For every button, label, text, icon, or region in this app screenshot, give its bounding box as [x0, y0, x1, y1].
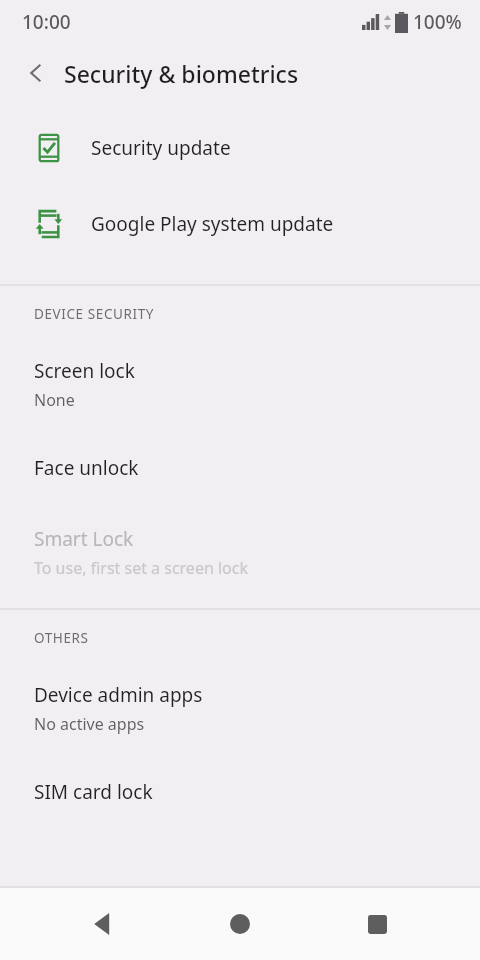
staticText: Google Play system update	[91, 211, 334, 237]
staticText: None	[34, 389, 75, 411]
staticText: OTHERS	[34, 629, 89, 647]
button[interactable]: Google Play system update	[0, 186, 480, 262]
staticText: 100%	[413, 9, 462, 35]
staticText: Security update	[91, 135, 231, 161]
button[interactable]: SIM card lock	[0, 750, 480, 834]
staticText: Screen lock	[34, 358, 135, 384]
button[interactable]: Security update	[0, 110, 480, 186]
button[interactable]: Smart Lock	[0, 510, 480, 594]
staticText: SIM card lock	[34, 779, 153, 805]
staticText: 10:00	[22, 9, 71, 35]
button[interactable]: Back	[14, 51, 58, 95]
button[interactable]: Recent apps	[343, 890, 411, 958]
button[interactable]: Device admin apps	[0, 666, 480, 750]
staticText: To use, first set a screen lock	[34, 557, 249, 579]
button[interactable]: Home	[206, 890, 274, 958]
staticText: DEVICE SECURITY	[34, 305, 155, 323]
button[interactable]: Face unlock	[0, 426, 480, 510]
staticText: Face unlock	[34, 455, 139, 481]
staticText: Smart Lock	[34, 526, 134, 552]
staticText: No active apps	[34, 713, 145, 735]
button[interactable]: Screen lock	[0, 342, 480, 426]
button[interactable]: Back	[69, 890, 137, 958]
staticText: Security & biometrics	[64, 58, 299, 89]
staticText: Device admin apps	[34, 682, 203, 708]
